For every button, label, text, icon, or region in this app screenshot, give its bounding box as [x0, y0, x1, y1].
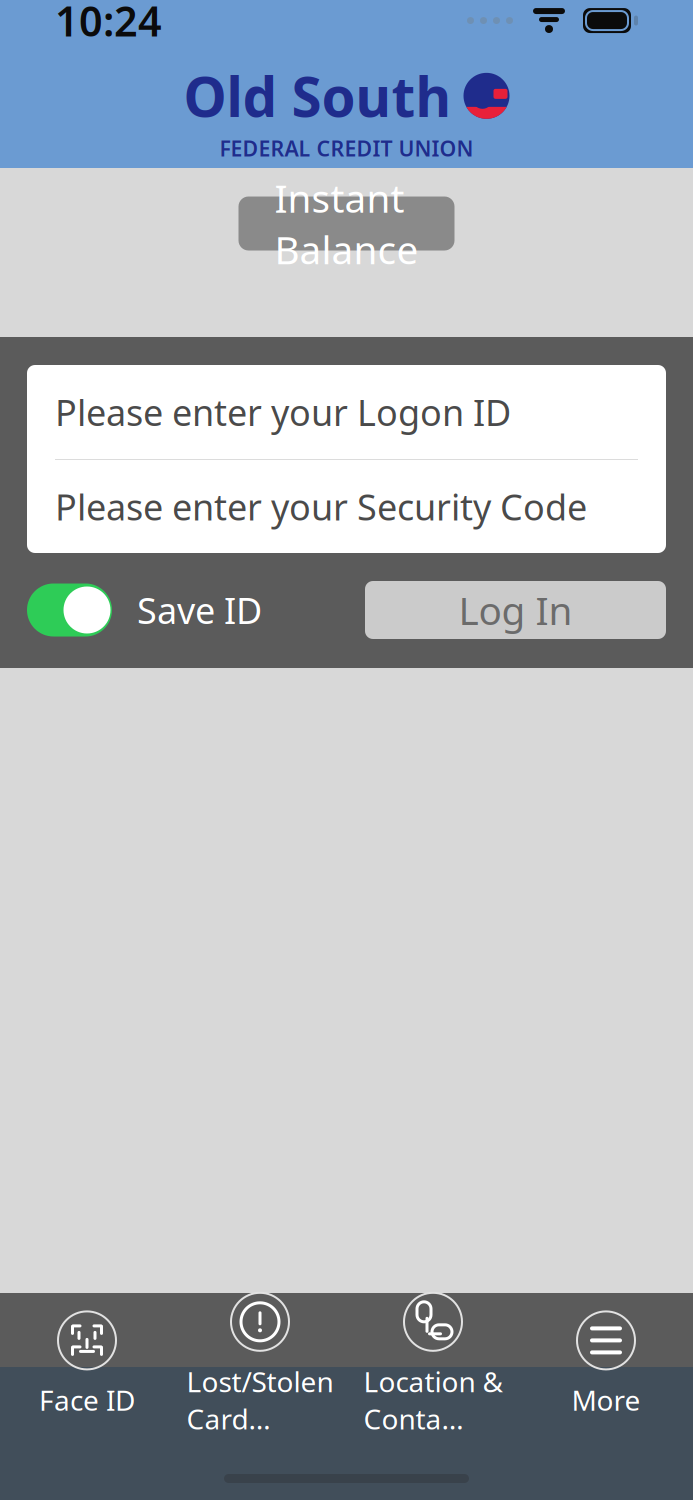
- button[interactable]: Location & Conta…: [346, 1313, 519, 1417]
- staticText: Location & Conta…: [363, 1363, 502, 1437]
- button[interactable]: Save ID toggle, on: [27, 583, 112, 636]
- button[interactable]: Please enter your Logon ID: [27, 365, 666, 459]
- staticText: Face ID: [39, 1381, 135, 1419]
- staticText: Save ID: [137, 586, 262, 634]
- button[interactable]: Face ID: [0, 1313, 173, 1417]
- staticText: Log In: [458, 584, 572, 636]
- staticText: 10:24: [55, 0, 162, 48]
- button[interactable]: Instant Balance: [238, 196, 454, 250]
- button[interactable]: More: [519, 1313, 692, 1417]
- button[interactable]: Please enter your Security Code: [27, 460, 666, 553]
- staticText: Please enter your Logon ID: [55, 388, 511, 436]
- staticText: Please enter your Security Code: [55, 483, 587, 530]
- staticText: FEDERAL CREDIT UNION: [219, 134, 473, 162]
- button[interactable]: Lost/Stolen Card…: [173, 1313, 346, 1417]
- staticText: More: [571, 1381, 640, 1419]
- staticText: Lost/Stolen Card…: [186, 1363, 333, 1437]
- button[interactable]: Log In: [365, 581, 666, 639]
- staticText: Old South: [183, 59, 451, 132]
- staticText: Instant Balance: [274, 172, 418, 275]
